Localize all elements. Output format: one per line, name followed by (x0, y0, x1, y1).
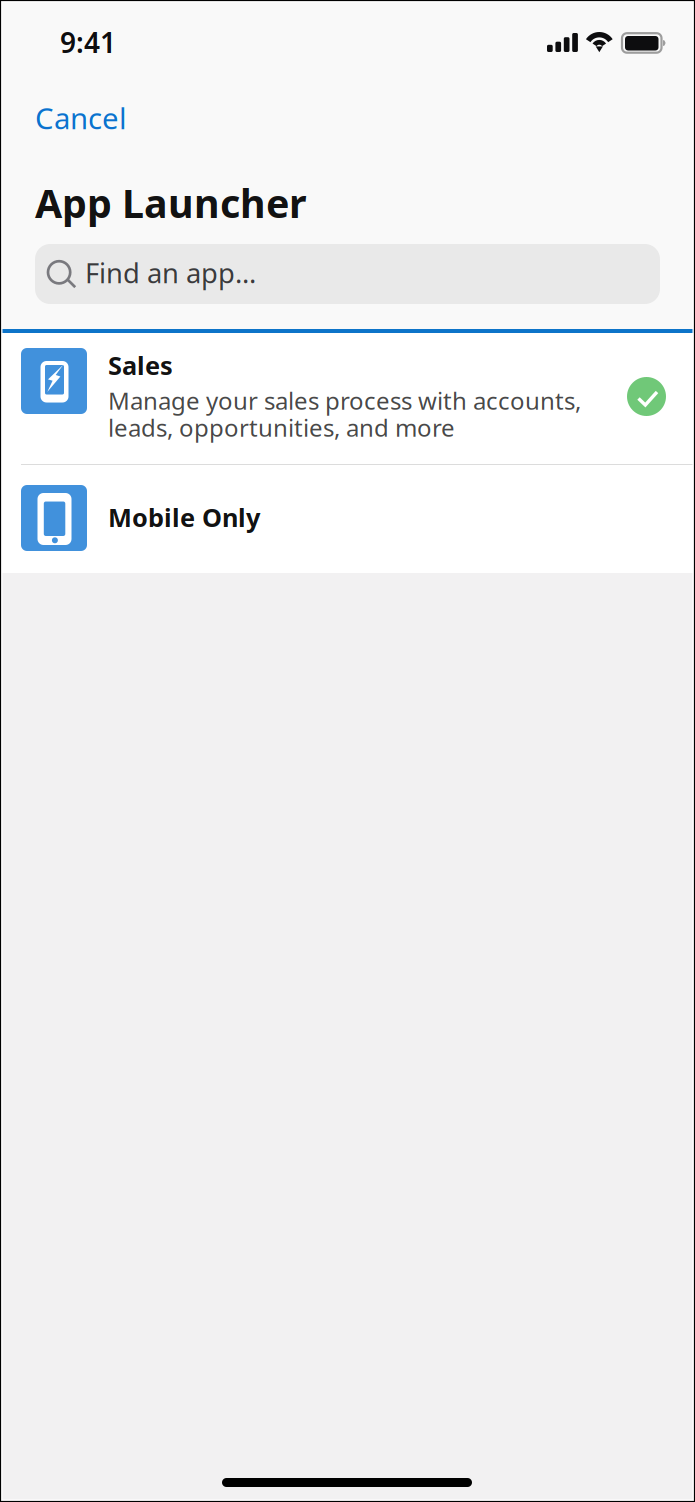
staticText: Cancel (35, 98, 127, 138)
staticText: 9:41 (60, 23, 116, 61)
staticText: Mobile Only (108, 500, 260, 534)
button[interactable]: Mobile Only (0, 465, 695, 573)
staticText: leads, opportunities, and more (108, 411, 455, 444)
staticText: Sales (108, 348, 173, 382)
button[interactable]: Sales (0, 333, 695, 464)
staticText: Find an app... (85, 254, 256, 291)
staticText: App Launcher (35, 176, 307, 230)
button[interactable]: Find an app... (35, 244, 660, 304)
staticText: Manage your sales process with accounts, (108, 384, 581, 417)
button[interactable]: Cancel (0, 0, 116, 60)
